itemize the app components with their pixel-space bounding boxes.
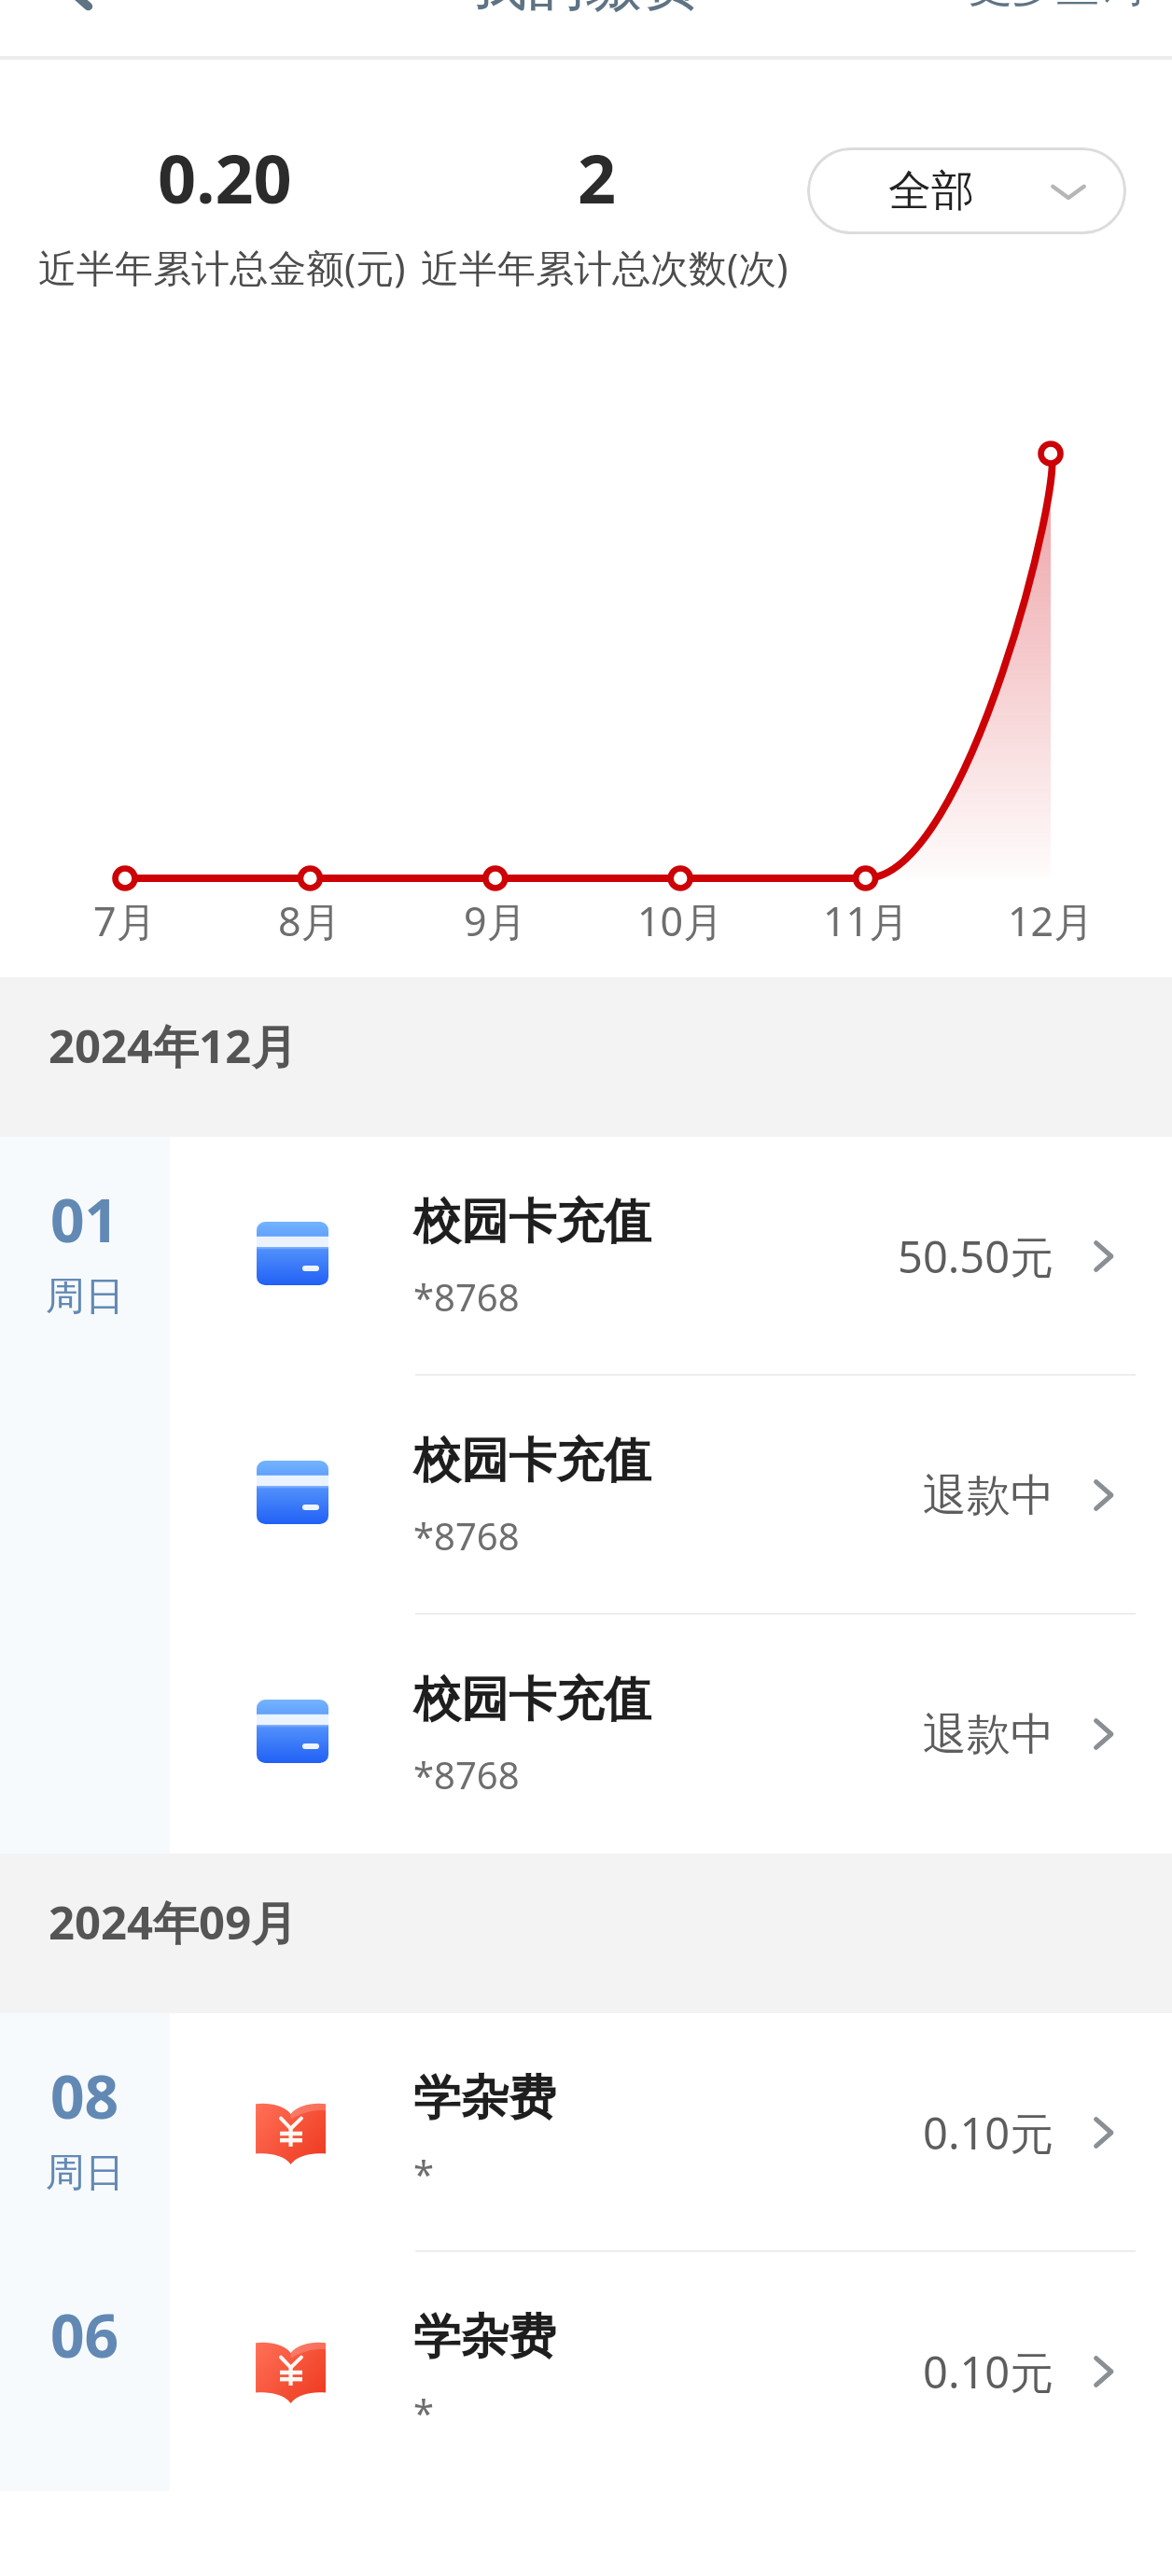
staticText: 退款中 xyxy=(923,1468,1054,1523)
staticText: * xyxy=(413,2387,435,2437)
staticText: 2 xyxy=(578,132,617,223)
staticText: *8768 xyxy=(413,1271,520,1322)
button[interactable]: 更多查询 xyxy=(943,0,1172,35)
staticText: 我的缴费 xyxy=(469,0,701,21)
staticText: 08 xyxy=(50,2055,119,2136)
staticText: 7月 xyxy=(93,893,157,948)
button[interactable]: 校园卡充值 xyxy=(170,1137,1172,1376)
staticText: 11月 xyxy=(823,893,910,948)
staticText: 校园卡充值 xyxy=(413,1670,651,1729)
staticText: 学杂费 xyxy=(413,2307,556,2367)
button[interactable]: Back xyxy=(29,0,122,31)
staticText: 校园卡充值 xyxy=(413,1431,651,1491)
staticText: 10月 xyxy=(637,893,724,948)
staticText: 50.50元 xyxy=(898,1226,1054,1286)
staticText: 近半年累计总金额(元) xyxy=(38,241,406,293)
staticText: * xyxy=(413,2148,435,2198)
staticText: 8月 xyxy=(278,893,342,948)
staticText: 周日 xyxy=(46,1272,124,1322)
staticText: 学杂费 xyxy=(413,2068,556,2128)
button[interactable]: 学杂费 xyxy=(170,2252,1172,2491)
staticText: *8768 xyxy=(413,1510,520,1561)
staticText: 0.10元 xyxy=(923,2103,1054,2163)
staticText: 9月 xyxy=(464,893,527,948)
button[interactable]: 校园卡充值 xyxy=(170,1615,1172,1854)
staticText: *8768 xyxy=(413,1749,520,1799)
staticText: 退款中 xyxy=(923,1707,1054,1762)
staticText: 0.20 xyxy=(158,132,292,223)
staticText: 全部 xyxy=(888,164,974,218)
staticText: 0.10元 xyxy=(923,2342,1054,2401)
staticText: 近半年累计总次数(次) xyxy=(421,241,788,293)
button[interactable]: 校园卡充值 xyxy=(170,1376,1172,1615)
staticText: 01 xyxy=(50,1179,119,1260)
staticText: 更多查询 xyxy=(968,0,1143,14)
button[interactable]: 学杂费 xyxy=(170,2013,1172,2252)
button[interactable]: 全部 xyxy=(807,147,1126,234)
staticText: 周日 xyxy=(46,2149,124,2198)
staticText: 2024年12月 xyxy=(49,1015,298,1077)
staticText: 12月 xyxy=(1008,893,1095,948)
staticText: 2024年09月 xyxy=(49,1891,298,1953)
staticText: 06 xyxy=(50,2294,119,2375)
staticText: 校园卡充值 xyxy=(413,1192,651,1252)
